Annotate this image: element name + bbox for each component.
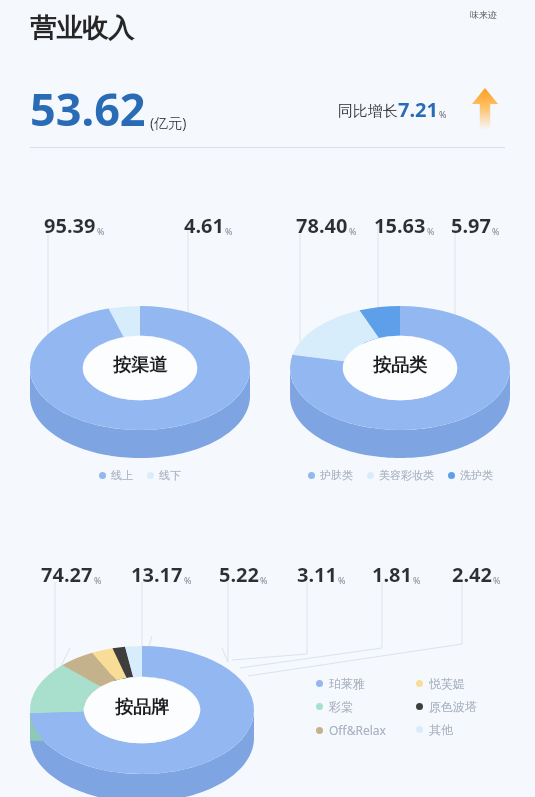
staticText: 78.40 [296, 212, 348, 239]
staticText: 悦芙媞 [429, 676, 465, 691]
button[interactable]: 彩棠 [316, 699, 416, 714]
staticText: 74.27 [41, 561, 93, 588]
staticText: 同比增长 [338, 102, 398, 121]
staticText: 其他 [429, 722, 453, 737]
staticText: 3.11 [297, 561, 337, 588]
button[interactable]: 原色波塔 [416, 699, 516, 714]
staticText: 13.17 [131, 561, 183, 588]
staticText: 按品类 [373, 354, 427, 377]
staticText: 1.81 [372, 561, 412, 588]
staticText: Off&Relax [329, 722, 386, 738]
staticText: 彩棠 [329, 699, 353, 714]
button[interactable]: 线下 [140, 468, 188, 482]
button[interactable]: 其他 [416, 722, 516, 737]
staticText: 护肤类 [320, 468, 353, 482]
staticText: % [260, 574, 268, 586]
button[interactable]: 洗护类 [441, 468, 500, 482]
staticText: 5.22 [219, 561, 259, 588]
staticText: % [184, 574, 192, 586]
staticText: 2.42 [452, 561, 492, 588]
staticText: (亿元) [150, 113, 187, 132]
staticText: 15.63 [374, 212, 426, 239]
staticText: 珀莱雅 [329, 676, 365, 691]
staticText: % [225, 225, 233, 237]
staticText: 线下 [159, 468, 181, 482]
other: Growth up [472, 88, 498, 130]
staticText: % [338, 574, 346, 586]
staticText: 营业收入 [30, 12, 134, 45]
staticText: % [439, 108, 447, 120]
staticText: % [427, 225, 435, 237]
staticText: % [493, 574, 501, 586]
staticText: 美容彩妆类 [379, 468, 434, 482]
staticText: % [94, 574, 102, 586]
staticText: 5.97 [451, 212, 491, 239]
staticText: 洗护类 [460, 468, 493, 482]
staticText: % [97, 225, 105, 237]
staticText: 7.21 [398, 96, 438, 123]
staticText: % [492, 225, 500, 237]
staticText: 53.62 [30, 78, 146, 139]
staticText: % [413, 574, 421, 586]
button[interactable]: Off&Relax [316, 722, 416, 738]
staticText: 味来迹 [470, 9, 497, 20]
button[interactable]: 护肤类 [301, 468, 360, 482]
staticText: 线上 [111, 468, 133, 482]
button[interactable]: 线上 [92, 468, 140, 482]
staticText: 原色波塔 [429, 699, 477, 714]
button[interactable]: 悦芙媞 [416, 676, 516, 691]
staticText: 95.39 [44, 212, 96, 239]
staticText: % [349, 225, 357, 237]
staticText: 4.61 [184, 212, 224, 239]
button[interactable]: 美容彩妆类 [360, 468, 441, 482]
staticText: 按渠道 [113, 354, 167, 377]
staticText: 按品牌 [115, 696, 169, 719]
button[interactable]: 珀莱雅 [316, 676, 416, 691]
